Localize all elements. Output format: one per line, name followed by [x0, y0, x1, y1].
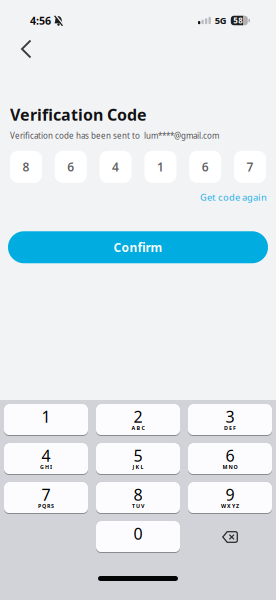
staticText: W X Y Z — [221, 502, 239, 510]
staticText: 2 — [133, 406, 142, 427]
staticText: 7 — [246, 159, 253, 175]
button[interactable]: 6 — [188, 443, 272, 475]
staticText: 6 — [225, 445, 234, 466]
staticText: 4 — [41, 445, 50, 466]
button[interactable]: 1 — [4, 404, 88, 436]
staticText: 6 — [67, 159, 74, 175]
staticText: 58 — [233, 15, 243, 26]
staticText: M N O — [222, 463, 237, 471]
staticText: 1 — [157, 159, 164, 175]
staticText: A B C — [131, 424, 144, 432]
button[interactable]: 4 — [100, 151, 132, 183]
button[interactable]: Delete — [188, 521, 272, 553]
button[interactable]: Get code again — [200, 191, 267, 203]
button[interactable]: Confirm — [8, 231, 268, 263]
staticText: 5G — [215, 14, 227, 27]
button[interactable]: 6 — [189, 151, 221, 183]
button[interactable]: 7 — [4, 482, 88, 514]
staticText: Verification Code — [10, 104, 147, 125]
button[interactable]: 2 — [96, 404, 180, 436]
button[interactable]: 8 — [10, 151, 42, 183]
staticText: 8 — [22, 159, 29, 175]
staticText: 9 — [225, 484, 234, 505]
button[interactable]: 5 — [96, 443, 180, 475]
staticText: J K L — [132, 463, 143, 471]
staticText: Confirm — [113, 239, 162, 255]
staticText: 8 — [133, 484, 142, 505]
button[interactable]: 4 — [4, 443, 88, 475]
button[interactable]: 8 — [96, 482, 180, 514]
button[interactable]: 6 — [55, 151, 87, 183]
staticText: T U V — [132, 502, 144, 510]
staticText: Get code again — [200, 191, 267, 203]
button[interactable]: 9 — [188, 482, 272, 514]
staticText: 4:56 — [30, 13, 51, 28]
button[interactable]: 7 — [234, 151, 266, 183]
staticText: D E F — [224, 424, 236, 432]
staticText: 5 — [133, 445, 142, 466]
button[interactable]: 1 — [144, 151, 176, 183]
button[interactable]: 3 — [188, 404, 272, 436]
staticText: 4 — [112, 159, 119, 175]
staticText: G H I — [40, 463, 52, 471]
staticText: 6 — [202, 159, 209, 175]
staticText: 3 — [225, 406, 234, 427]
staticText: 0 — [133, 523, 142, 544]
staticText: 1 — [41, 406, 50, 427]
button[interactable]: Back — [0, 32, 45, 65]
button[interactable]: 0 — [96, 521, 180, 553]
staticText: 7 — [41, 484, 50, 505]
staticText: Verification code has been sent to lum**… — [10, 130, 219, 141]
staticText: P Q R S — [38, 502, 54, 510]
